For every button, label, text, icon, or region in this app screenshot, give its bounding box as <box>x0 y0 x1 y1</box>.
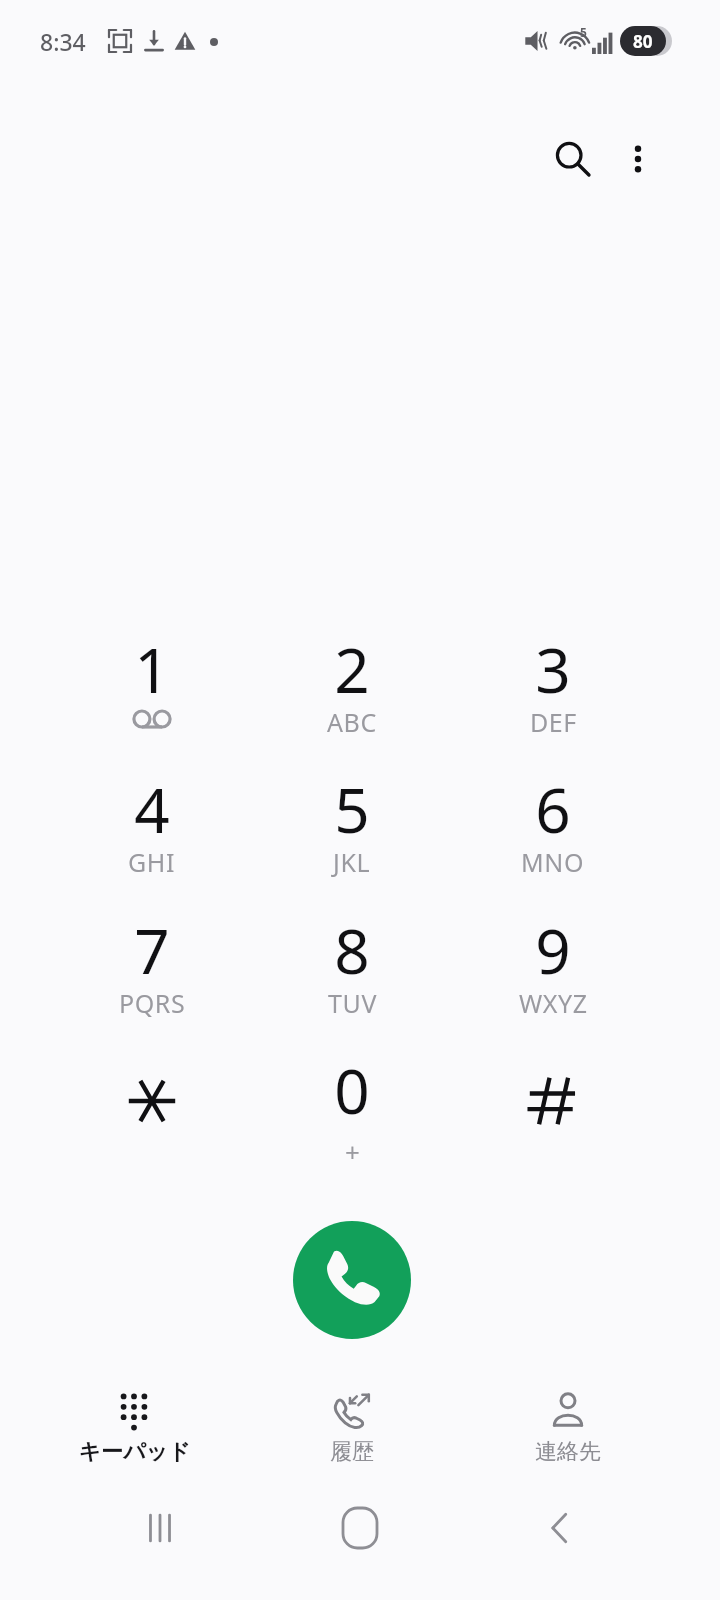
button[interactable]: More options <box>602 123 674 195</box>
button[interactable]: 8 <box>257 902 447 1040</box>
button[interactable]: 0 <box>257 1042 447 1180</box>
button[interactable]: Home <box>310 1478 410 1578</box>
button[interactable]: 9 <box>458 902 648 1040</box>
staticText: 4 <box>134 767 170 851</box>
button[interactable]: 5 <box>257 761 447 899</box>
staticText: キーパッド <box>78 1438 191 1466</box>
staticText: 80 <box>633 30 653 53</box>
button[interactable]: Call <box>293 1221 411 1339</box>
button[interactable]: 連絡先 <box>458 1372 678 1478</box>
staticText: JKL <box>333 845 371 879</box>
staticText: 3 <box>535 627 571 711</box>
button[interactable] <box>57 1042 247 1180</box>
staticText: 5 <box>580 24 587 40</box>
button[interactable]: 6 <box>458 761 648 899</box>
button[interactable]: Back <box>510 1478 610 1578</box>
staticText: 0 <box>334 1048 370 1132</box>
staticText: 1 <box>134 627 170 711</box>
button[interactable]: キーパッド <box>24 1372 244 1478</box>
staticText: WXYZ <box>519 986 588 1020</box>
staticText: GHI <box>128 845 176 879</box>
staticText: MNO <box>521 845 585 879</box>
button[interactable]: 2 <box>257 621 447 759</box>
button[interactable]: 7 <box>57 902 247 1040</box>
staticText: + <box>345 1134 360 1169</box>
button[interactable]: 4 <box>57 761 247 899</box>
staticText: 8:34 <box>40 26 86 57</box>
staticText: TUV <box>328 986 377 1020</box>
staticText: ABC <box>327 705 377 739</box>
staticText: PQRS <box>119 986 186 1020</box>
staticText: 2 <box>334 627 370 711</box>
staticText: 6 <box>535 767 571 851</box>
staticText: 5 <box>334 767 370 851</box>
staticText: 連絡先 <box>535 1438 601 1466</box>
staticText: 履歴 <box>330 1438 374 1466</box>
button[interactable]: 3 <box>458 621 648 759</box>
staticText: 9 <box>535 908 571 992</box>
button[interactable]: 履歴 <box>242 1372 462 1478</box>
staticText: 7 <box>134 908 170 992</box>
button[interactable] <box>458 1042 648 1180</box>
button[interactable]: Search <box>537 123 609 195</box>
staticText: DEF <box>530 705 577 739</box>
staticText: 8 <box>334 908 370 992</box>
button[interactable]: Recents <box>110 1478 210 1578</box>
button[interactable]: 1 <box>57 621 247 759</box>
